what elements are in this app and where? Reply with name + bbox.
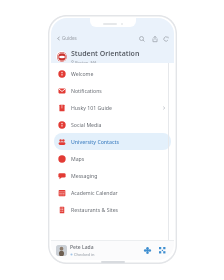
button[interactable]: Welcome	[54, 65, 171, 82]
staticText: Checked in	[74, 252, 95, 257]
button[interactable]: Scan QR code	[156, 244, 169, 257]
button[interactable]: Restaurants & Sites	[54, 201, 171, 218]
staticText: Pete Lada	[70, 244, 94, 251]
staticText: Boston, MA	[75, 60, 97, 63]
staticText: University Contacts	[71, 138, 168, 145]
button[interactable]: Messaging	[54, 167, 171, 184]
staticText: Husky 101 Guide	[71, 104, 162, 111]
staticText: Social Media	[71, 121, 168, 128]
button[interactable]: Student Orientation	[56, 49, 169, 63]
button[interactable]: University Contacts	[54, 133, 171, 150]
staticText: Student Orientation	[71, 49, 140, 59]
button[interactable]: Badges	[141, 244, 154, 257]
button[interactable]: Refresh	[161, 32, 174, 45]
button[interactable]: Social Media	[54, 116, 171, 133]
staticText: Notifications	[71, 87, 168, 94]
staticText: Academic Calendar	[71, 189, 168, 196]
staticText: Guides	[62, 35, 77, 41]
button[interactable]: Guides	[51, 31, 81, 45]
staticText: Maps	[71, 155, 168, 162]
staticText: Messaging	[71, 172, 168, 179]
button[interactable]: Search	[135, 32, 148, 45]
button[interactable]: Pete Lada	[56, 244, 141, 257]
button[interactable]: Maps	[54, 150, 171, 167]
button[interactable]: Share	[148, 32, 161, 45]
staticText: Restaurants & Sites	[71, 206, 168, 213]
button[interactable]: Notifications	[54, 82, 171, 99]
button[interactable]: Academic Calendar	[54, 184, 171, 201]
staticText: Welcome	[71, 70, 168, 77]
button[interactable]: Husky 101 Guide	[54, 99, 171, 116]
